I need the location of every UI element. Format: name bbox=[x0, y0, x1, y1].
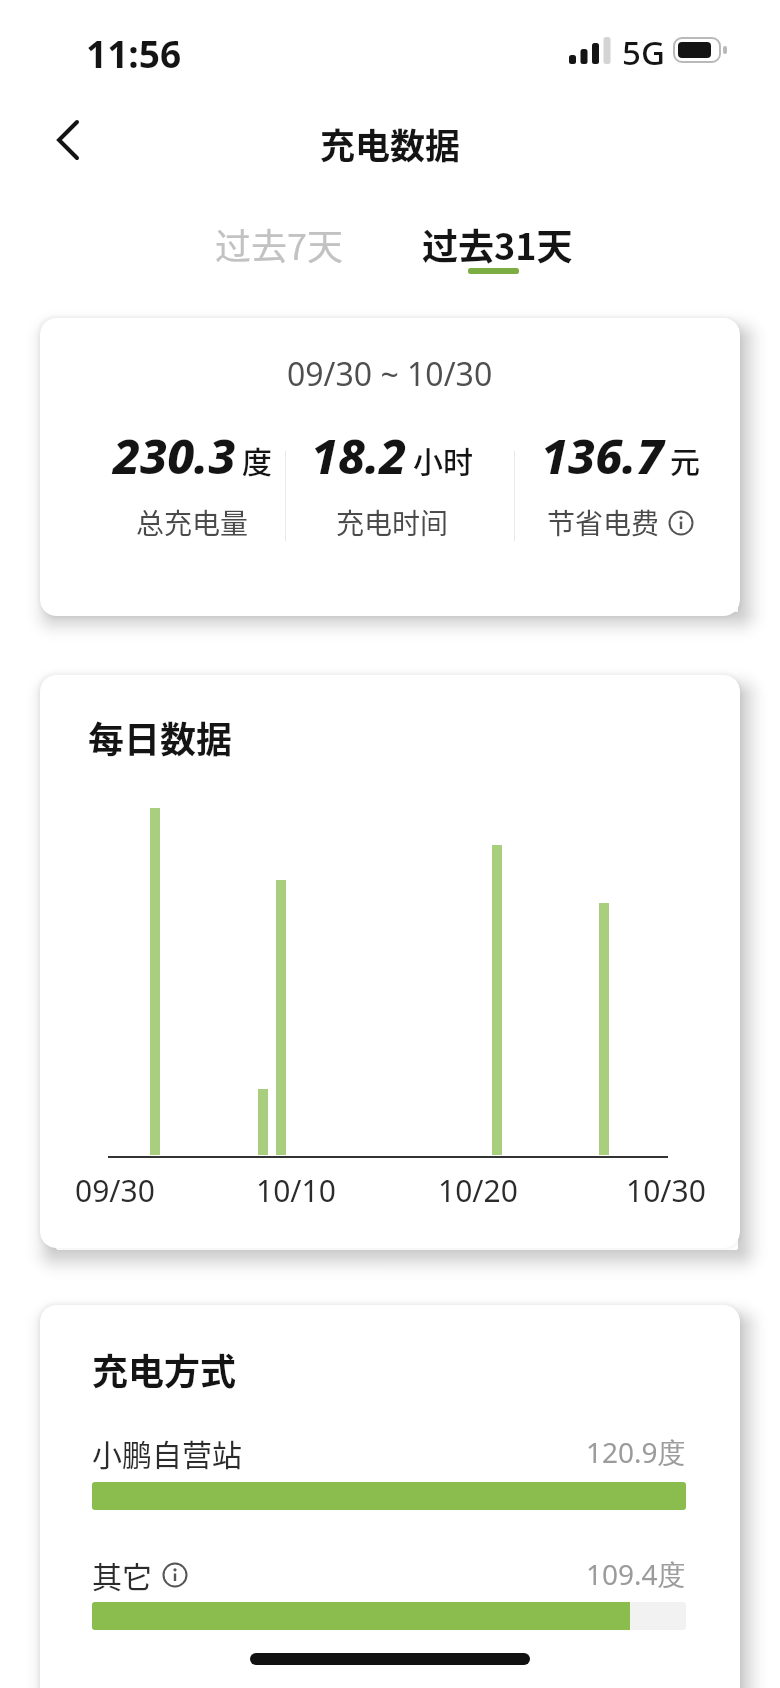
staticText: 09/30 bbox=[75, 1170, 155, 1211]
staticText: 10/10 bbox=[256, 1170, 336, 1211]
staticText: 其它 bbox=[92, 1553, 152, 1596]
staticText: 10/20 bbox=[438, 1170, 518, 1211]
staticText: 136.7 bbox=[541, 423, 664, 488]
button[interactable]: 过去31天 bbox=[397, 218, 597, 266]
staticText: 充电时间 bbox=[336, 502, 449, 543]
staticText: 充电方式 bbox=[92, 1343, 237, 1395]
staticText: 过去31天 bbox=[422, 218, 573, 266]
staticText: 总充电量 bbox=[136, 502, 249, 543]
staticText: 元 bbox=[670, 438, 700, 481]
staticText: 09/30 ~ 10/30 bbox=[287, 352, 493, 396]
staticText: 充电数据 bbox=[320, 118, 461, 169]
staticText: 小时 bbox=[413, 438, 473, 481]
button[interactable]: 过去7天 bbox=[179, 218, 379, 266]
staticText: 每日数据 bbox=[88, 711, 233, 763]
staticText: 小鹏自营站 bbox=[92, 1431, 242, 1474]
staticText: 10/30 bbox=[626, 1170, 706, 1211]
staticText: 230.3 bbox=[113, 423, 236, 488]
staticText: 11:56 bbox=[86, 28, 182, 78]
staticText: 过去7天 bbox=[215, 218, 343, 266]
button[interactable] bbox=[40, 112, 96, 168]
staticText: 120.9度 bbox=[586, 1433, 686, 1471]
staticText: 5G bbox=[622, 30, 665, 75]
staticText: 度 bbox=[242, 438, 272, 481]
staticText: 109.4度 bbox=[586, 1555, 686, 1593]
staticText: 18.2 bbox=[311, 423, 407, 488]
staticText: 节省电费 bbox=[547, 502, 660, 543]
